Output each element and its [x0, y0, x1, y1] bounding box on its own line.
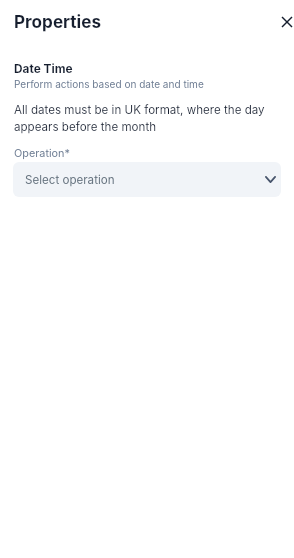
staticText: Select operation	[25, 173, 115, 187]
staticText: Properties	[14, 11, 102, 32]
staticText: All dates must be in UK format, where th…	[14, 100, 270, 134]
staticText: Date Time	[14, 62, 73, 76]
button[interactable]: Close	[272, 7, 294, 35]
staticText: Perform actions based on date and time	[14, 78, 204, 90]
staticText: Operation*	[14, 146, 70, 159]
button[interactable]: Select operation	[13, 162, 281, 197]
